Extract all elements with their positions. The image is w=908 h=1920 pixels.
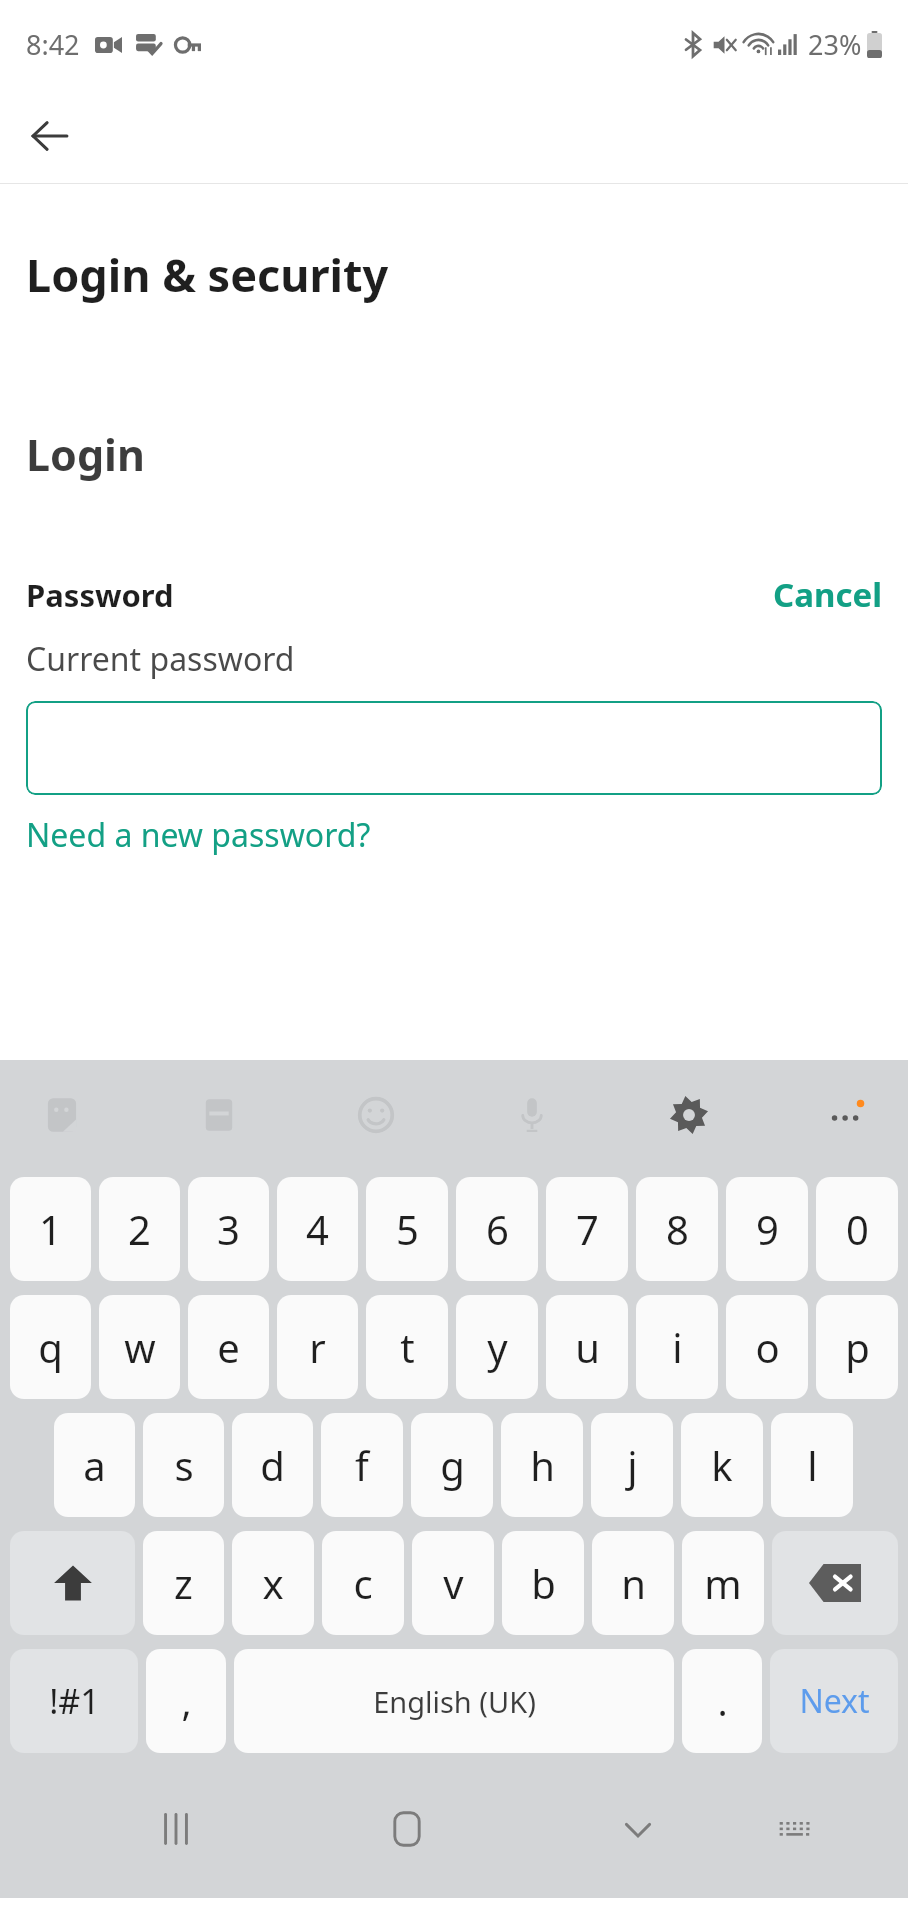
button[interactable]: 2 — [99, 1177, 180, 1281]
staticText: , — [181, 1675, 192, 1727]
staticText: x — [262, 1556, 284, 1610]
staticText: Login & security — [26, 244, 389, 305]
button[interactable]: 7 — [546, 1177, 628, 1281]
button[interactable]: Home — [367, 1789, 447, 1869]
button[interactable]: 0 — [816, 1177, 898, 1281]
button[interactable]: q — [10, 1295, 91, 1399]
button[interactable]: 3 — [188, 1177, 269, 1281]
button[interactable]: Keyboard settings — [657, 1083, 721, 1147]
button[interactable]: , — [146, 1649, 226, 1753]
button[interactable]: 9 — [726, 1177, 808, 1281]
staticText: j — [627, 1438, 638, 1492]
staticText: 23% — [808, 26, 862, 63]
staticText: 9 — [756, 1202, 779, 1256]
button[interactable]: More options — [814, 1083, 878, 1147]
button[interactable]: 6 — [456, 1177, 538, 1281]
staticText: English (UK) — [373, 1682, 536, 1721]
button[interactable]: m — [682, 1531, 764, 1635]
staticText: 3 — [217, 1202, 240, 1256]
button[interactable]: b — [502, 1531, 584, 1635]
button[interactable]: Voice input — [500, 1083, 564, 1147]
button[interactable]: GIF — [187, 1083, 251, 1147]
button[interactable]: Shift — [10, 1531, 135, 1635]
button[interactable]: !#1 — [10, 1649, 138, 1753]
button[interactable]: k — [681, 1413, 763, 1517]
button[interactable]: Hide keyboard — [598, 1789, 678, 1869]
staticText: Login — [26, 425, 145, 484]
button[interactable]: Change keyboard — [753, 1789, 833, 1869]
button[interactable]: l — [771, 1413, 853, 1517]
button[interactable]: Need a new password? — [26, 813, 371, 857]
button[interactable]: s — [143, 1413, 224, 1517]
staticText: o — [755, 1320, 780, 1374]
button[interactable]: o — [726, 1295, 808, 1399]
staticText: q — [38, 1320, 63, 1374]
staticText: r — [309, 1320, 326, 1374]
staticText: s — [174, 1438, 194, 1492]
staticText: 4 — [306, 1202, 329, 1256]
staticText: Current password — [26, 637, 295, 681]
button[interactable]: Cancel — [773, 572, 882, 617]
button[interactable]: 1 — [10, 1177, 91, 1281]
staticText: b — [531, 1556, 556, 1610]
staticText: w — [124, 1320, 156, 1374]
button[interactable]: . — [682, 1649, 762, 1753]
button[interactable]: Emoji — [344, 1083, 408, 1147]
staticText: Cancel — [773, 572, 882, 617]
staticText: 6 — [486, 1202, 509, 1256]
button[interactable]: w — [99, 1295, 180, 1399]
staticText: n — [621, 1556, 646, 1610]
button[interactable]: 8 — [636, 1177, 718, 1281]
button[interactable]: a — [54, 1413, 135, 1517]
button[interactable]: Backspace — [772, 1531, 898, 1635]
button[interactable]: g — [411, 1413, 493, 1517]
button[interactable]: English (UK) — [234, 1649, 674, 1753]
staticText: m — [704, 1556, 742, 1610]
staticText: 8 — [666, 1202, 689, 1256]
staticText: y — [487, 1320, 508, 1374]
staticText: 8:42 — [26, 26, 80, 63]
staticText: z — [174, 1556, 193, 1610]
staticText: l — [807, 1438, 818, 1492]
staticText: . — [717, 1675, 728, 1727]
button[interactable]: Stickers — [30, 1083, 94, 1147]
staticText: f — [355, 1438, 369, 1492]
button[interactable]: v — [412, 1531, 494, 1635]
staticText: 5 — [396, 1202, 419, 1256]
button[interactable]: z — [143, 1531, 224, 1635]
staticText: e — [217, 1320, 240, 1374]
staticText: 7 — [576, 1202, 599, 1256]
staticText: u — [575, 1320, 600, 1374]
button[interactable]: u — [546, 1295, 628, 1399]
staticText: i — [672, 1320, 683, 1374]
button[interactable]: h — [501, 1413, 583, 1517]
button[interactable]: f — [321, 1413, 403, 1517]
button[interactable]: r — [277, 1295, 358, 1399]
staticText: Password — [26, 574, 174, 616]
staticText: p — [845, 1320, 870, 1374]
staticText: Need a new password? — [26, 813, 371, 857]
button[interactable]: p — [816, 1295, 898, 1399]
staticText: !#1 — [49, 1678, 100, 1724]
button[interactable]: c — [322, 1531, 404, 1635]
button[interactable]: t — [366, 1295, 448, 1399]
staticText: a — [83, 1438, 106, 1492]
staticText: v — [443, 1556, 464, 1610]
button[interactable]: i — [636, 1295, 718, 1399]
button[interactable]: 4 — [277, 1177, 358, 1281]
staticText: g — [440, 1438, 465, 1492]
button[interactable]: x — [232, 1531, 314, 1635]
button[interactable]: y — [456, 1295, 538, 1399]
staticText: Next — [799, 1679, 870, 1723]
staticText: 2 — [128, 1202, 151, 1256]
button[interactable]: Back — [16, 102, 84, 170]
button[interactable]: d — [232, 1413, 313, 1517]
button[interactable]: j — [591, 1413, 673, 1517]
button[interactable]: e — [188, 1295, 269, 1399]
button[interactable]: Recent apps — [136, 1789, 216, 1869]
button[interactable]: Next — [770, 1649, 898, 1753]
button[interactable]: 5 — [366, 1177, 448, 1281]
staticText: t — [400, 1320, 415, 1374]
button[interactable] — [26, 701, 882, 795]
button[interactable]: n — [592, 1531, 674, 1635]
